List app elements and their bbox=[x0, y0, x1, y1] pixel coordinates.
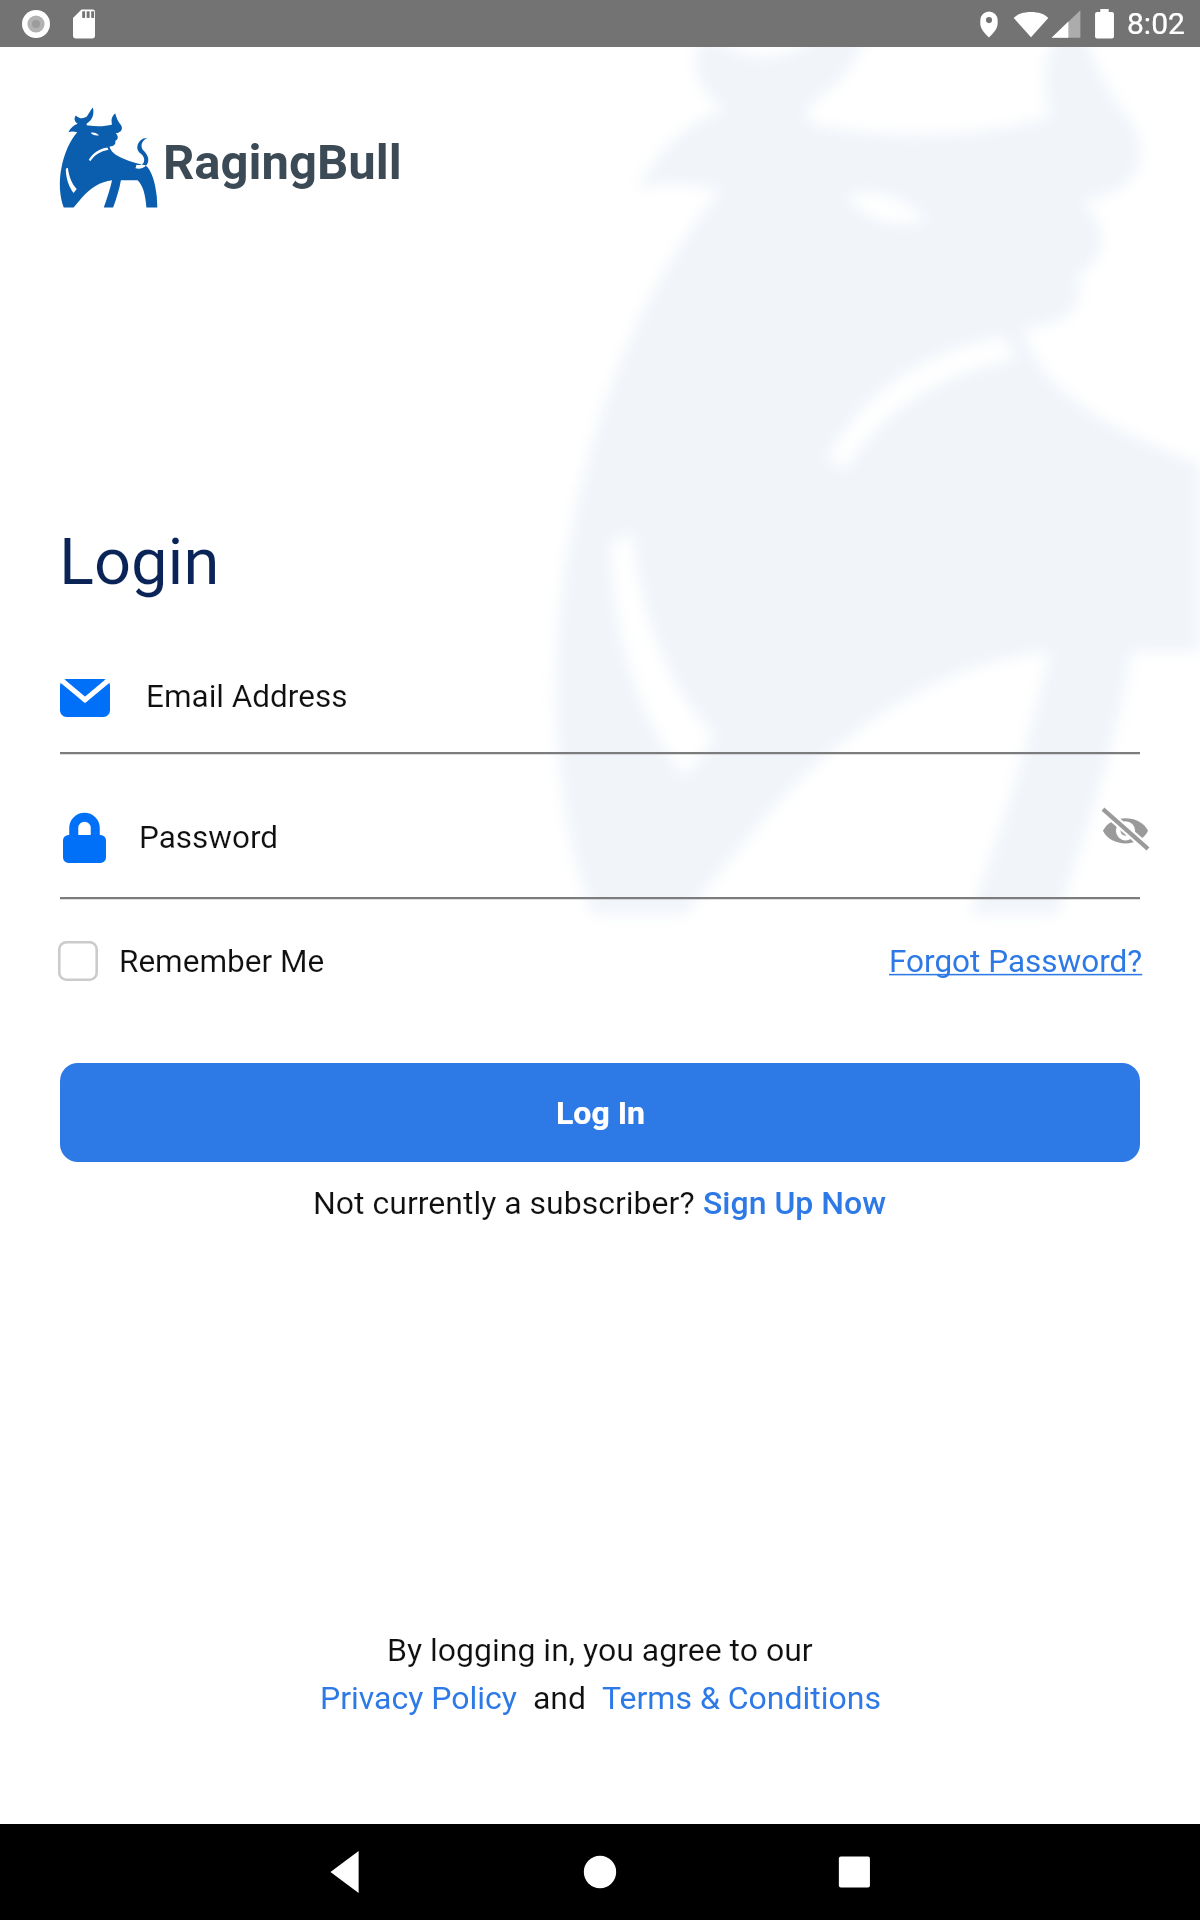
staticText: and bbox=[517, 1679, 602, 1717]
button[interactable]: Forgot Password? bbox=[889, 943, 1143, 980]
staticText: Remember Me bbox=[119, 943, 325, 980]
staticText: By logging in, you agree to our bbox=[387, 1631, 813, 1669]
staticText: Email Address bbox=[146, 678, 348, 715]
button[interactable]: Back bbox=[0, 1824, 400, 1920]
button[interactable]: Show password bbox=[1091, 799, 1159, 859]
button[interactable]: Home bbox=[400, 1824, 800, 1920]
staticText: Password bbox=[139, 819, 279, 856]
button[interactable]: Terms & Conditions bbox=[602, 1679, 881, 1717]
button[interactable]: Sign Up Now bbox=[703, 1184, 887, 1222]
button[interactable]: Recent apps bbox=[800, 1824, 1200, 1920]
button[interactable]: Privacy Policy bbox=[320, 1679, 517, 1717]
button[interactable]: Log In bbox=[60, 1063, 1140, 1162]
staticText: Log In bbox=[556, 1094, 645, 1132]
staticText: 8:02 bbox=[1127, 6, 1185, 41]
staticText: Not currently a subscriber? bbox=[313, 1184, 703, 1222]
button[interactable] bbox=[60, 797, 1080, 897]
button[interactable] bbox=[60, 652, 1140, 752]
button[interactable]: Remember Me bbox=[58, 935, 325, 987]
staticText: RagingBull bbox=[163, 134, 402, 191]
staticText: Login bbox=[59, 524, 220, 600]
